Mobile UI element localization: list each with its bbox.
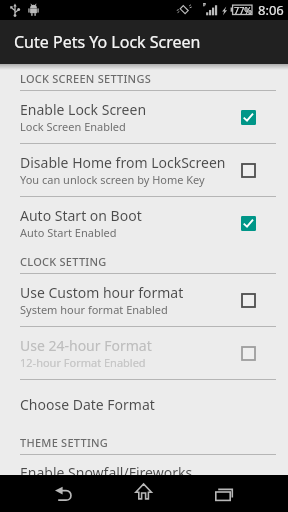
button[interactable]: Enable Snowfall/Fireworks xyxy=(0,455,288,475)
staticText: 12-hour Format Enabled xyxy=(20,355,146,370)
staticText: System hour format Enabled xyxy=(20,302,168,317)
button[interactable]: Recent apps xyxy=(203,475,245,511)
staticText: Use Custom hour format xyxy=(20,283,184,302)
button[interactable]: Home xyxy=(123,475,165,511)
staticText: Choose Date Format xyxy=(20,395,155,414)
staticText: Auto Start on Boot xyxy=(20,206,142,225)
staticText: 77% xyxy=(234,4,252,16)
staticText: Cute Pets Yo Lock Screen xyxy=(14,31,201,53)
staticText: 8:06 xyxy=(258,1,284,19)
button[interactable]: Enable Lock Screen xyxy=(0,91,288,144)
button[interactable]: Auto Start on Boot xyxy=(0,197,288,249)
button[interactable]: Use 24-hour Format xyxy=(0,327,288,380)
staticText: Enable Lock Screen xyxy=(20,100,147,119)
staticText: You can unlock screen by Home Key xyxy=(20,172,205,187)
staticText: THEME SETTING xyxy=(20,435,109,450)
button[interactable]: Use Custom hour format xyxy=(0,274,288,327)
button[interactable]: Choose Date Format xyxy=(0,380,288,429)
button[interactable]: Disable Home from LockScreen xyxy=(0,144,288,197)
staticText: LOCK SCREEN SETTINGS xyxy=(20,71,151,86)
staticText: Lock Screen Enabled xyxy=(20,119,126,134)
staticText: Disable Home from LockScreen xyxy=(20,153,226,172)
staticText: Auto Start Enabled xyxy=(20,225,117,240)
button[interactable]: Back xyxy=(43,475,85,511)
staticText: CLOCK SETTING xyxy=(20,254,107,269)
staticText: Enable Snowfall/Fireworks xyxy=(20,463,193,475)
staticText: Use 24-hour Format xyxy=(20,336,152,355)
button[interactable]: Cute Pets Yo Lock Screen xyxy=(0,20,288,64)
